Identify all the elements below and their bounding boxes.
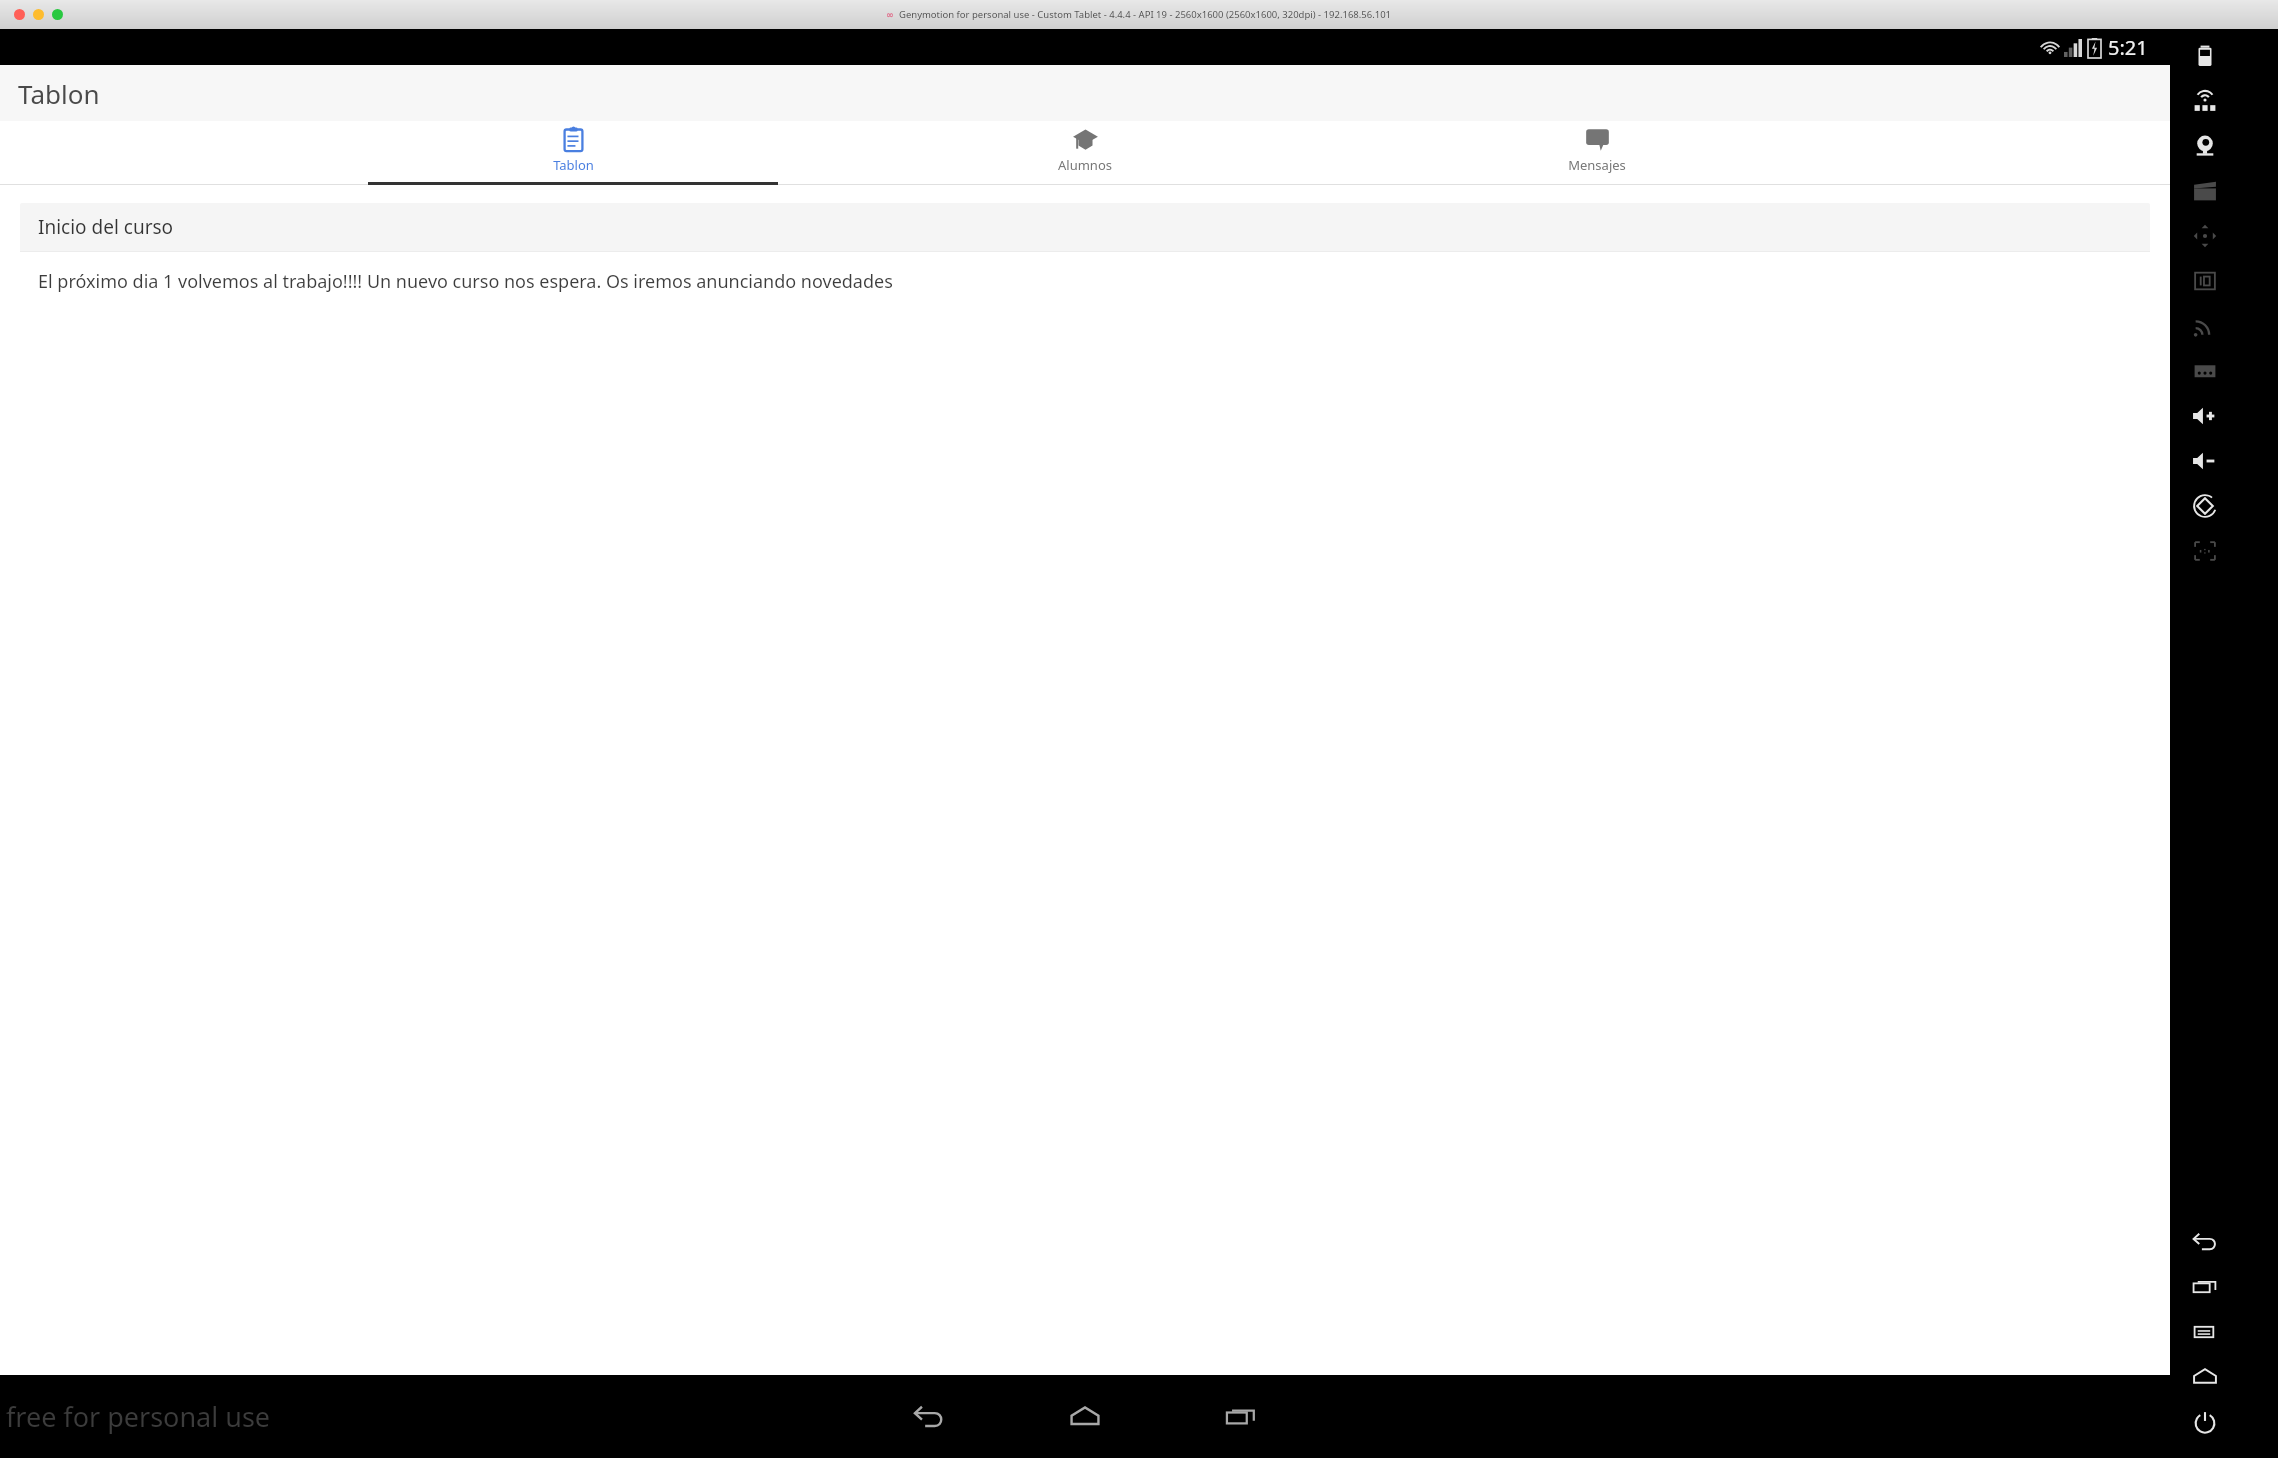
button[interactable]: Network [2192,303,2248,348]
button[interactable]: Recent apps [2192,1264,2248,1309]
button[interactable]: Back [881,1387,977,1447]
button[interactable]: Volume down [2192,438,2248,483]
button[interactable]: GPS [2192,78,2248,123]
button[interactable]: Home [2192,1354,2248,1399]
button[interactable]: Scale 1:1 [2192,528,2248,573]
button[interactable]: Inicio del curso [20,203,2150,310]
staticText: Mensajes [1568,156,1626,174]
staticText: free for personal use [6,1398,271,1435]
button[interactable]: Alumnos [829,121,1341,181]
staticText: El próximo dia 1 volvemos al trabajo!!!!… [38,269,893,294]
button[interactable]: Rotate [2192,483,2248,528]
button[interactable]: Tablon [317,121,829,181]
button[interactable]: Power [2192,1399,2248,1444]
button[interactable]: More [2192,348,2248,393]
button[interactable]: D-pad [2192,213,2248,258]
staticText: Inicio del curso [38,214,174,240]
staticText: Genymotion for personal use - Custom Tab… [899,8,1392,21]
button[interactable]: Mensajes [1341,121,1853,181]
button[interactable]: Home [1037,1387,1133,1447]
staticText: 5:21 [2108,34,2148,61]
button[interactable]: Identifiers [2192,258,2248,303]
button[interactable]: Menu [2192,1309,2248,1354]
staticText: Tablon [18,76,100,111]
button[interactable]: Recent apps [1193,1387,1289,1447]
button[interactable]: Video [2192,168,2248,213]
button[interactable]: Camera [2192,123,2248,168]
button[interactable]: Battery [2192,33,2248,78]
button[interactable]: Volume up [2192,393,2248,438]
staticText: Alumnos [1058,156,1112,174]
staticText: ∞ [886,10,894,20]
button[interactable]: Back [2192,1219,2248,1264]
staticText: Tablon [553,156,594,174]
